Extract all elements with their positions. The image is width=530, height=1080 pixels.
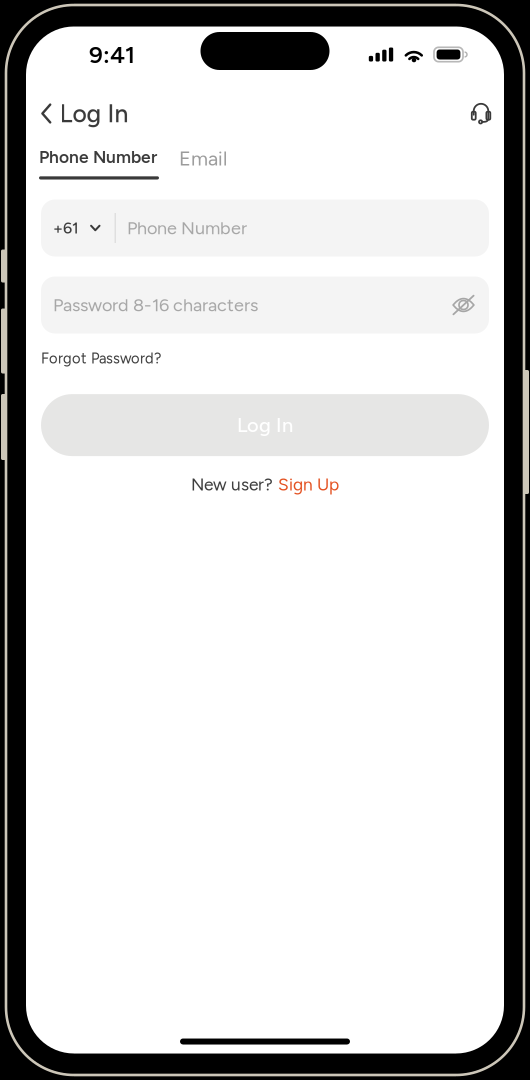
- button[interactable]: +61: [41, 199, 115, 256]
- staticText: Email: [179, 146, 227, 170]
- staticText: Forgot Password?: [41, 349, 161, 367]
- button[interactable]: Sign Up: [278, 474, 339, 495]
- staticText: Phone Number: [39, 146, 157, 167]
- staticText: Phone Number: [127, 217, 247, 239]
- staticText: Sign Up: [278, 474, 339, 495]
- button[interactable]: Email: [159, 146, 251, 182]
- button[interactable]: Forgot Password?: [41, 341, 161, 375]
- button[interactable]: Customer support: [457, 94, 504, 132]
- button[interactable]: Show password: [438, 285, 489, 325]
- button[interactable]: Log In: [41, 394, 489, 456]
- staticText: Log In: [237, 413, 293, 437]
- staticText: New user?: [191, 474, 273, 495]
- staticText: +61: [53, 218, 79, 238]
- button[interactable]: Phone Number: [39, 146, 159, 179]
- staticText: 9:41: [89, 40, 135, 69]
- button[interactable]: Log In: [26, 93, 141, 134]
- staticText: Password 8-16 characters: [53, 294, 258, 316]
- staticText: Log In: [60, 99, 129, 128]
